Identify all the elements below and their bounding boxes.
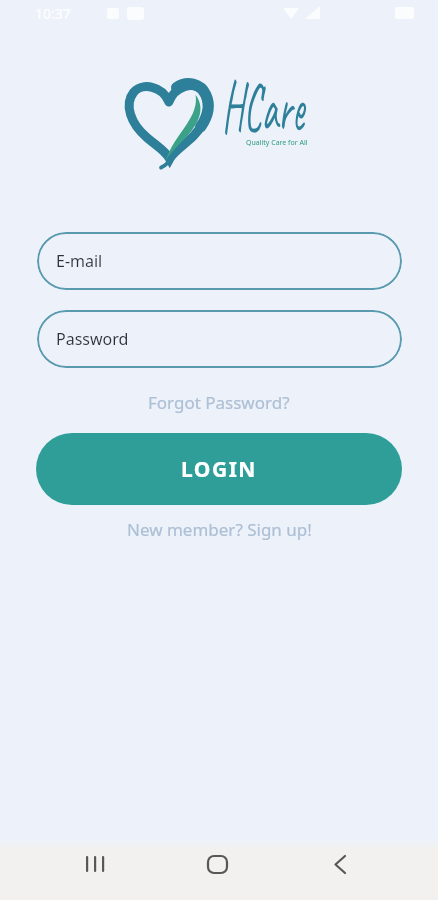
staticText: E-mail: [56, 250, 103, 272]
button[interactable]: E-mail: [37, 232, 402, 290]
button[interactable]: [72, 840, 120, 888]
staticText: LOGIN: [181, 455, 257, 484]
staticText: 10:37: [35, 4, 71, 23]
button[interactable]: [193, 840, 241, 888]
staticText: HCare: [222, 62, 305, 150]
button[interactable]: LOGIN: [36, 433, 402, 505]
button[interactable]: New member? Sign up!: [127, 518, 312, 541]
button[interactable]: Forgot Password?: [148, 391, 290, 414]
staticText: Password: [56, 328, 129, 350]
button[interactable]: Password: [37, 310, 402, 368]
button[interactable]: [316, 840, 364, 888]
staticText: Quality Care for All: [246, 138, 308, 148]
